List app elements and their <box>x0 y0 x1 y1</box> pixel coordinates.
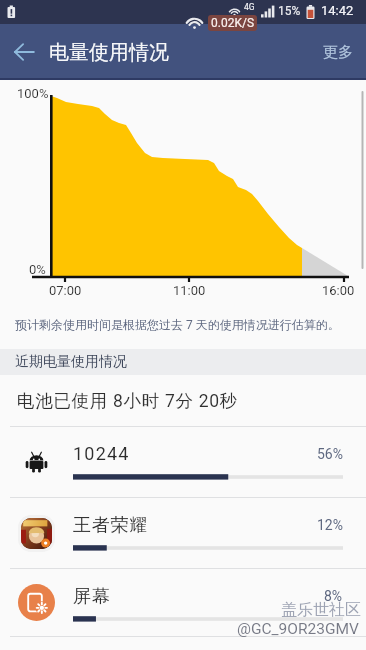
staticText: 盖乐世社区 <box>281 600 361 620</box>
staticText: 15% <box>278 4 301 18</box>
button[interactable]: 电池已使用 8小时 7分 20秒 <box>0 375 366 426</box>
staticText: 4G <box>244 2 255 12</box>
staticText: 王者荣耀 <box>73 514 149 537</box>
staticText: 0% <box>29 262 46 277</box>
staticText: 更多 <box>323 43 353 62</box>
staticText: 近期电量使用情况 <box>15 353 127 371</box>
button[interactable]: 10244 <box>0 427 366 497</box>
button[interactable]: 王者荣耀 <box>0 498 366 568</box>
staticText: 16:00 <box>322 283 355 298</box>
staticText: 56% <box>317 446 343 462</box>
staticText: 电量使用情况 <box>49 40 169 65</box>
staticText: 14:42 <box>321 3 354 18</box>
staticText: 11:00 <box>173 283 206 298</box>
staticText: 07:00 <box>49 283 82 298</box>
staticText: 电池已使用 8小时 7分 20秒 <box>17 390 239 412</box>
button[interactable]: Back <box>0 28 48 76</box>
staticText: @GC_9OR23GMV <box>237 620 359 638</box>
staticText: 0.02K/S <box>211 16 255 30</box>
button[interactable]: 屏幕 <box>0 569 366 636</box>
staticText: 100% <box>17 86 49 101</box>
staticText: 预计剩余使用时间是根据您过去 7 天的使用情况进行估算的。 <box>15 317 340 332</box>
staticText: 12% <box>317 517 343 533</box>
staticText: 10244 <box>73 443 130 464</box>
staticText: 屏幕 <box>73 585 111 608</box>
button[interactable]: 更多 <box>310 27 366 78</box>
staticText: 8% <box>324 588 343 604</box>
